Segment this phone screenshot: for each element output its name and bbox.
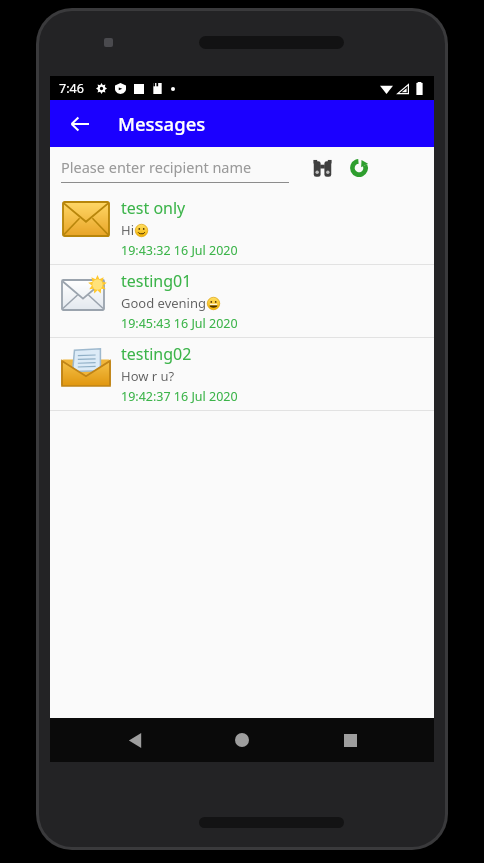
staticText: 19:42:37 16 Jul 2020 [121, 388, 238, 405]
button[interactable]: testing01 [50, 265, 434, 337]
staticText: 19:45:43 16 Jul 2020 [121, 315, 238, 332]
staticText: testing01 [121, 270, 192, 292]
staticText: 19:43:32 16 Jul 2020 [121, 242, 238, 259]
staticText: Good evening [121, 294, 206, 312]
button[interactable]: testing02 [50, 338, 434, 410]
button[interactable]: Please enter recipient name [61, 157, 289, 183]
staticText: Messages [118, 111, 206, 136]
button[interactable]: Refresh [345, 154, 373, 182]
button[interactable]: Back [62, 106, 98, 142]
staticText: How r u? [121, 367, 175, 385]
staticText: 7:46 [59, 80, 84, 97]
staticText: Please enter recipient name [61, 157, 252, 177]
staticText: test only [121, 197, 186, 219]
button[interactable]: Recent apps [327, 718, 373, 762]
staticText: testing02 [121, 343, 192, 365]
button[interactable]: Search [308, 154, 336, 182]
staticText: Hi [121, 221, 134, 239]
button[interactable]: Home [219, 718, 265, 762]
button[interactable]: Back [112, 718, 158, 762]
button[interactable]: test only [50, 192, 434, 264]
